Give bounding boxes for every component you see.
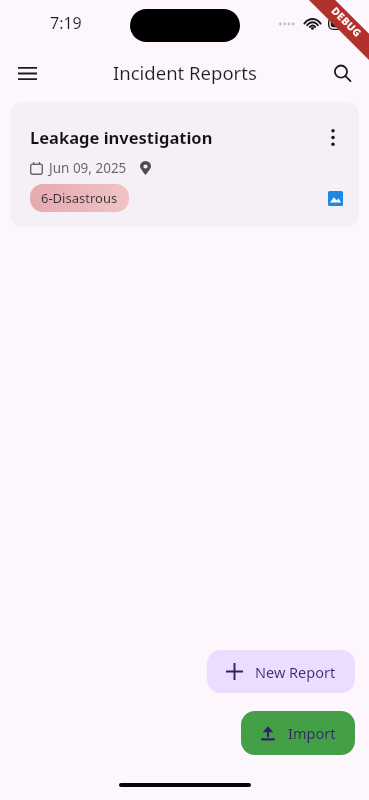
button[interactable]: More options bbox=[317, 121, 349, 153]
button[interactable]: Open navigation menu bbox=[6, 52, 48, 94]
button[interactable]: Import bbox=[241, 711, 355, 755]
staticText: New Report bbox=[255, 662, 336, 682]
button[interactable]: New Report bbox=[207, 650, 355, 693]
staticText: 6-Disastrous bbox=[41, 189, 118, 207]
staticText: 7:19 bbox=[50, 12, 82, 34]
staticText: DEBUG bbox=[329, 4, 365, 40]
button[interactable]: Search bbox=[321, 52, 363, 94]
staticText: Jun 09, 2025 bbox=[49, 159, 127, 177]
button[interactable]: Leakage investigation bbox=[10, 102, 359, 227]
staticText: Import bbox=[288, 723, 336, 743]
button[interactable]: 6-Disastrous bbox=[30, 184, 129, 212]
staticText: Incident Reports bbox=[113, 60, 257, 85]
button[interactable]: View attached image bbox=[321, 184, 349, 212]
staticText: Leakage investigation bbox=[30, 126, 317, 148]
